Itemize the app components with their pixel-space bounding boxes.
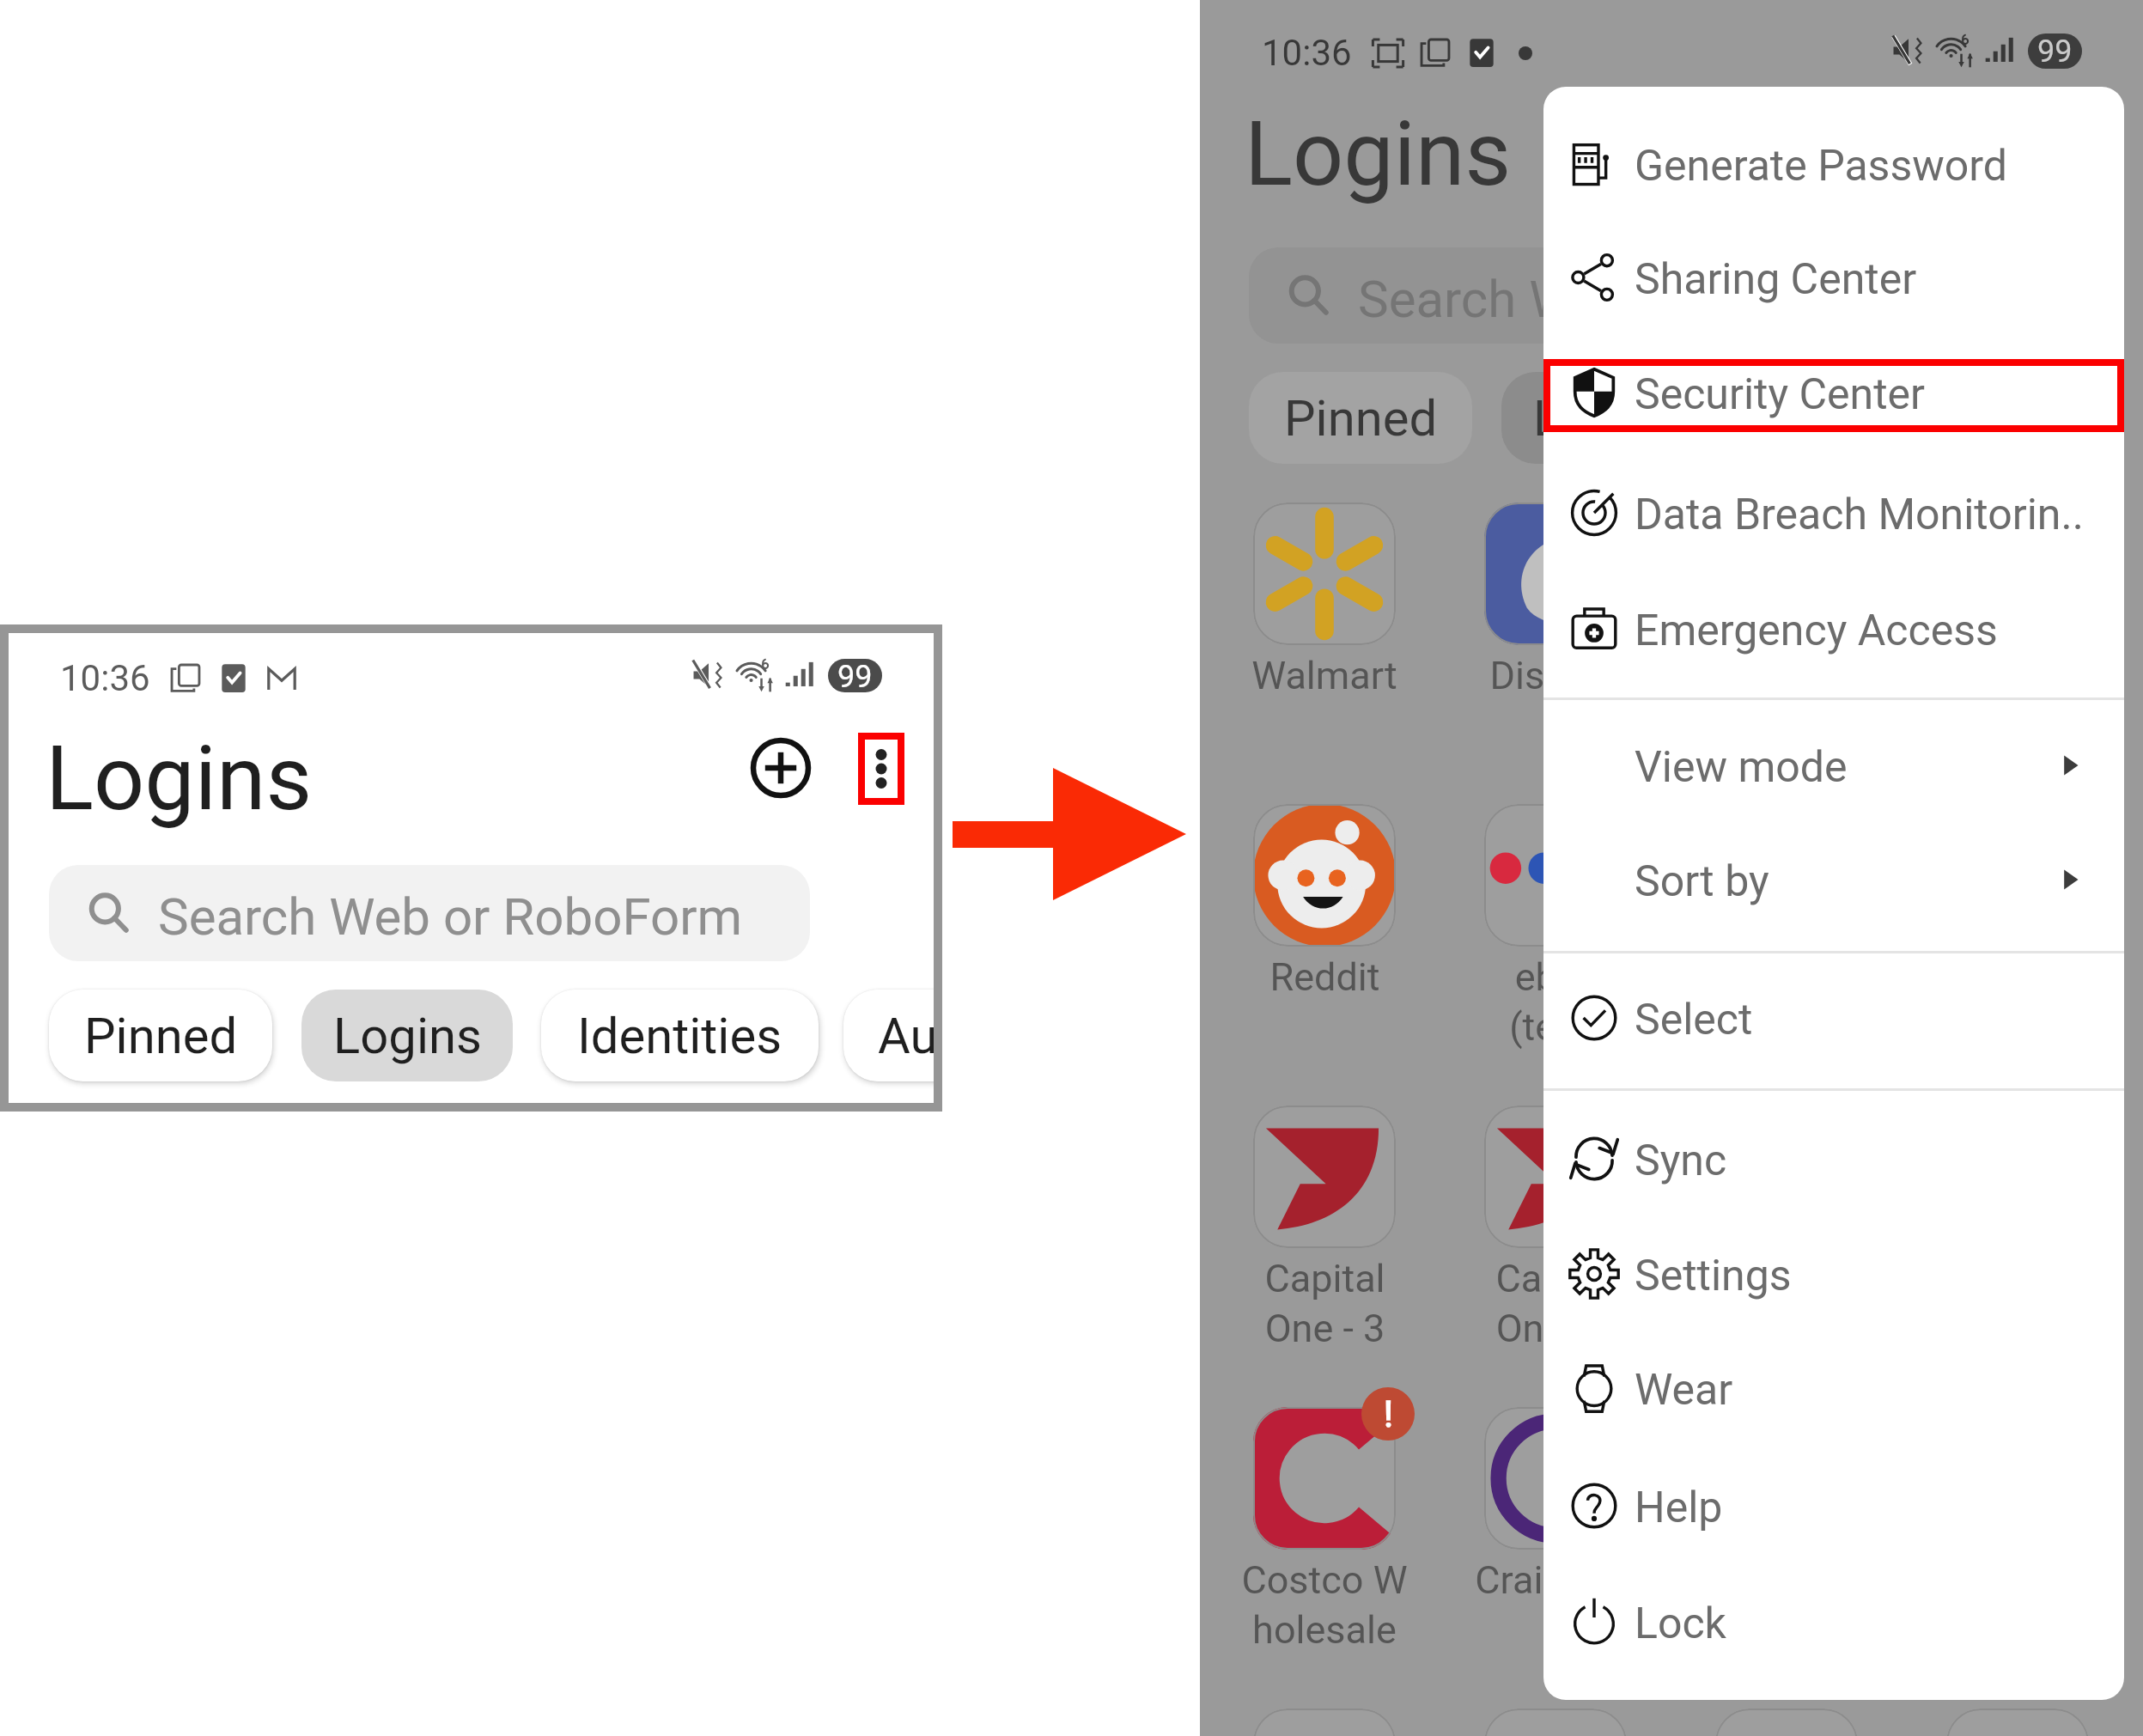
button[interactable]: Capital One - 2 [1484,1106,1627,1248]
staticText: Walmart [1251,653,1397,698]
button[interactable]: Settings [1543,1227,2124,1321]
staticText: Capital One - 2 [1495,1256,1616,1351]
staticText: Logins [1533,389,1682,448]
staticText: Settings [1635,1251,1792,1301]
button[interactable]: Costco W holesale [1253,1407,1396,1550]
button[interactable]: Craigslist [1484,1407,1627,1550]
button[interactable]: Logins [1501,372,1713,464]
staticText: Pinned [1284,389,1438,448]
staticText: Sharing Center [1635,254,1917,305]
staticText: Lock [1635,1599,1726,1649]
staticText: Search Web or RoboForm [158,886,743,947]
button[interactable]: More options [858,733,904,805]
button[interactable]: Select [1543,971,2124,1065]
staticText: Pinned [84,1007,238,1065]
button[interactable]: Sort by [1543,832,2124,927]
staticText: Discord [1489,653,1622,698]
staticText: Emergency Access [1635,606,1998,656]
button[interactable]: Autofill [843,990,942,1081]
staticText: Identities [577,1007,782,1065]
staticText: ! [1384,1393,1393,1435]
staticText: Identities [1777,389,1982,448]
button[interactable]: Search Web or RoboForm [49,865,810,961]
button[interactable]: Sharing Center [1543,230,2124,325]
staticText: Capital One - 3 [1264,1256,1385,1351]
button[interactable]: Add login [734,721,828,815]
staticText: Logins [333,1007,482,1065]
button[interactable]: Pinned [49,990,272,1081]
staticText: Logins [1245,102,1512,207]
button[interactable]: Identities [541,990,819,1081]
staticText: 10:36 [60,657,150,699]
staticText: View mode [1635,742,1848,793]
staticText: Search Web or RoboForm [1358,269,1943,329]
button[interactable]: App [1946,503,2089,645]
staticText: Costco W holesale [1241,1557,1408,1653]
button[interactable]: App [1715,1106,1858,1248]
button[interactable]: Help [1543,1459,2124,1553]
button[interactable]: Discord [1484,503,1627,645]
staticText: Data Breach Monitorin.. [1635,490,2084,540]
button[interactable]: View mode [1543,718,2124,813]
button[interactable]: ebay (test) [1484,804,1627,947]
staticText: 10:36 [1262,32,1352,74]
staticText: Reddit [1269,954,1380,1000]
button[interactable]: Sync [1543,1112,2124,1206]
button[interactable]: Generate Password [1543,117,2124,211]
staticText: Sort by [1635,856,1769,907]
staticText: 99 [837,659,873,692]
button[interactable]: Security Center [1543,345,2124,440]
staticText: Help [1635,1483,1723,1533]
button[interactable]: App [1715,503,1858,645]
button[interactable]: Reddit [1253,804,1396,947]
staticText: Craigslist [1475,1557,1636,1603]
button[interactable]: App [1715,1407,1858,1550]
button[interactable]: Lock [1543,1575,2124,1669]
button[interactable]: Data Breach Monitorin.. [1543,466,2124,560]
button[interactable]: Walmart [1253,503,1396,645]
staticText: Security Center [1635,369,1925,420]
button[interactable]: Emergency Access [1543,582,2124,676]
staticText: Autofill [878,1007,942,1065]
staticText: Generate Password [1635,141,2007,192]
button[interactable]: Pinned [1249,372,1472,464]
button[interactable]: Logins [301,990,513,1081]
staticText: Select [1635,995,1753,1045]
button[interactable]: Wear [1543,1341,2124,1435]
staticText: Wear [1635,1365,1733,1416]
staticText: Sync [1635,1136,1727,1186]
button[interactable]: Identities [1741,372,2018,464]
staticText: 99 [2037,34,2073,69]
button[interactable]: Capital One - 3 [1253,1106,1396,1248]
button[interactable]: App [1946,804,2089,947]
button[interactable]: App [1715,804,1858,947]
staticText: Logins [46,727,313,831]
staticText: ebay (test) [1509,954,1602,1050]
